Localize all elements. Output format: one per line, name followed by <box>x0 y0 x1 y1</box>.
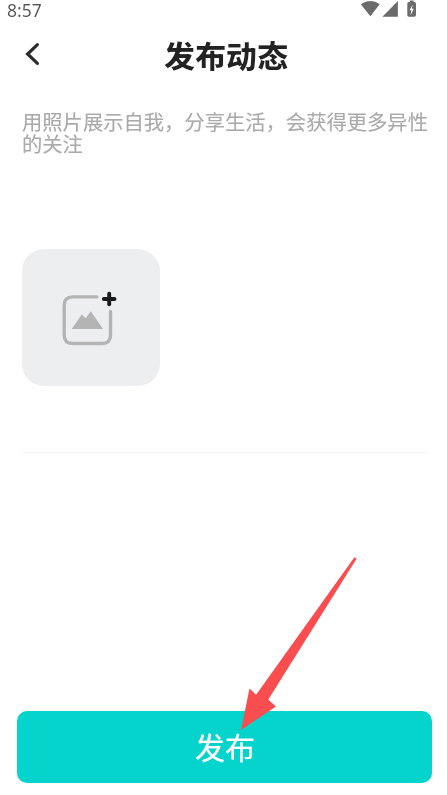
staticText: 发布动态 <box>164 32 288 77</box>
staticText: 用照片展示自我，分享生活，会获得更多异性的关注 <box>22 106 431 158</box>
staticText: 8:57 <box>7 0 42 20</box>
button[interactable]: Back <box>8 30 56 78</box>
button[interactable]: Add photo <box>22 249 160 386</box>
button[interactable]: 发布 <box>17 711 432 783</box>
staticText: 发布 <box>195 724 255 767</box>
